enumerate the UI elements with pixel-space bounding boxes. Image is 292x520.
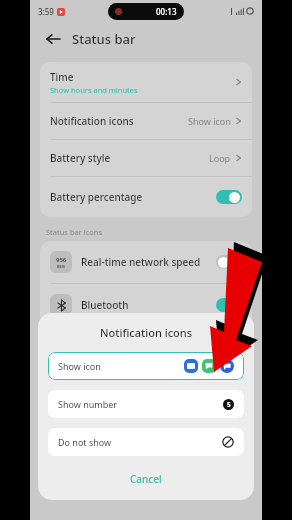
staticText: Real-time network speed (81, 255, 216, 269)
button[interactable]: Show number (48, 390, 244, 418)
staticText: Bluetooth (81, 298, 216, 312)
staticText: Loop (209, 152, 231, 164)
staticText: Show icon (188, 115, 231, 127)
staticText: 3:59 (38, 6, 54, 17)
staticText: Notification icons (50, 114, 188, 128)
button[interactable]: Back (40, 26, 66, 52)
staticText: 00:13 (156, 6, 177, 17)
staticText: Show number (58, 398, 223, 410)
button[interactable]: Battery percentage (40, 177, 252, 217)
button[interactable]: Notification icons (40, 103, 252, 139)
button[interactable]: 956 (40, 241, 252, 283)
button[interactable]: Toggle (216, 255, 242, 269)
button[interactable]: Bluetooth (40, 284, 252, 326)
button[interactable]: Cancel (48, 468, 244, 490)
staticText: Notification icons (48, 325, 244, 340)
button[interactable]: Toggle (216, 190, 242, 204)
button[interactable]: Time (40, 62, 252, 102)
button[interactable]: Do not show (48, 428, 244, 456)
staticText: Do not show (58, 436, 222, 448)
staticText: Time (50, 70, 74, 84)
staticText: Status bar (72, 30, 136, 48)
staticText: Battery style (50, 151, 209, 165)
button[interactable]: Battery style (40, 140, 252, 176)
button[interactable]: Toggle (216, 298, 242, 312)
staticText: Status bar icons (46, 227, 103, 237)
staticText: 956 (56, 256, 67, 264)
staticText: Battery percentage (50, 190, 216, 204)
staticText: 5 (227, 400, 231, 409)
staticText: Show hours and minutes (50, 85, 138, 95)
button[interactable]: Show icon (48, 352, 244, 380)
staticText: Cancel (130, 472, 162, 486)
staticText: KB/S (57, 264, 66, 269)
staticText: Show icon (58, 360, 184, 372)
